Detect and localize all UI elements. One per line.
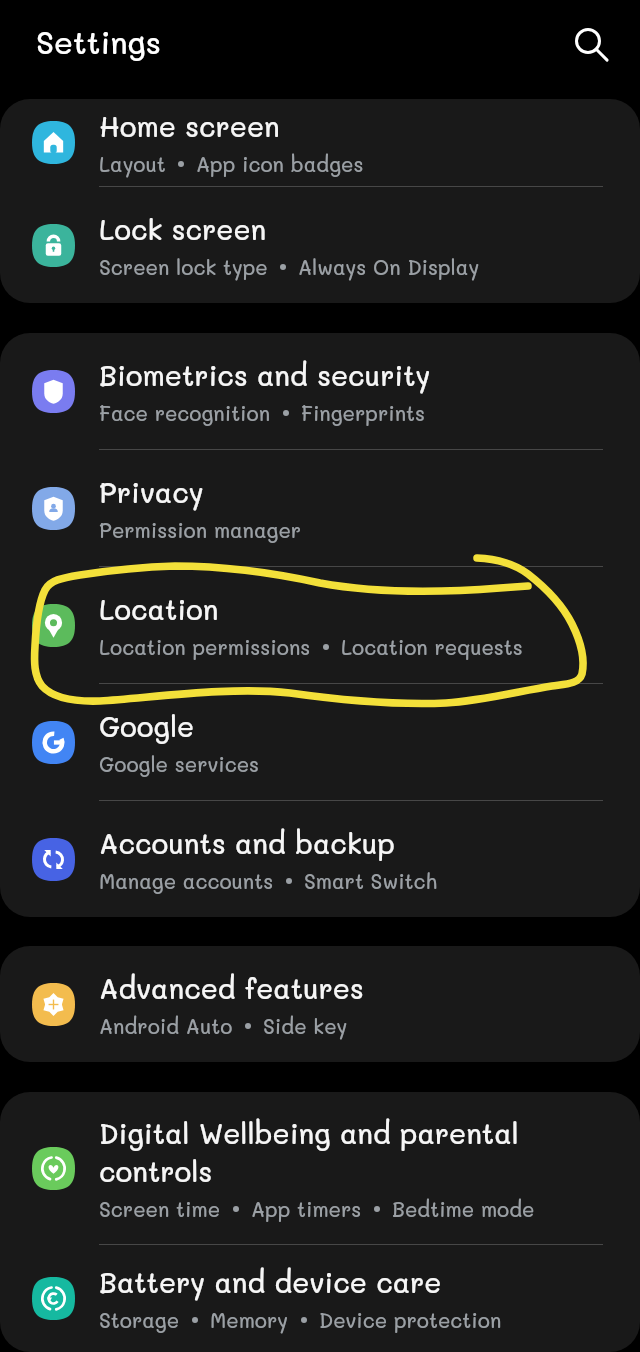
button[interactable]: Advanced features (0, 946, 640, 1062)
staticText: Side key (263, 1013, 348, 1039)
button[interactable]: Location (0, 567, 640, 683)
button[interactable]: Lock screen (0, 187, 640, 303)
staticText: Home screen (99, 108, 280, 144)
button[interactable]: Accounts and backup (0, 801, 640, 917)
staticText: Google services (99, 751, 260, 777)
staticText: Android Auto (99, 1013, 233, 1039)
button[interactable]: Digital Wellbeing and parental controls (0, 1092, 640, 1244)
staticText: App icon badges (196, 151, 364, 177)
button[interactable]: Privacy (0, 450, 640, 566)
staticText: Privacy (99, 474, 204, 510)
staticText: Biometrics and security (99, 357, 431, 393)
staticText: Permission manager (99, 517, 302, 543)
staticText: Screen lock type (99, 254, 268, 280)
button[interactable]: Biometrics and security (0, 333, 640, 449)
button[interactable]: Home screen (0, 99, 640, 186)
staticText: Location (99, 591, 219, 627)
staticText: Always On Display (298, 254, 480, 280)
staticText: Location permissions (99, 634, 311, 660)
button[interactable]: Search (564, 17, 612, 65)
staticText: Battery and device care (99, 1264, 442, 1300)
staticText: Google (99, 708, 195, 744)
staticText: Lock screen (99, 211, 267, 247)
staticText: Bedtime mode (392, 1196, 535, 1222)
staticText: Memory (210, 1307, 289, 1333)
button[interactable]: Google (0, 684, 640, 800)
staticText: Location requests (341, 634, 523, 660)
staticText: Fingerprints (301, 400, 425, 426)
staticText: Device protection (319, 1307, 502, 1333)
staticText: Layout (99, 151, 166, 177)
staticText: Smart Switch (304, 868, 438, 894)
staticText: Face recognition (99, 400, 271, 426)
staticText: Manage accounts (99, 868, 274, 894)
button[interactable]: Battery and device care (0, 1245, 640, 1352)
staticText: Digital Wellbeing and parental controls (99, 1115, 610, 1189)
staticText: Advanced features (99, 970, 364, 1006)
staticText: Screen time (99, 1196, 221, 1222)
staticText: App timers (251, 1196, 362, 1222)
staticText: Accounts and backup (99, 825, 395, 861)
staticText: Storage (99, 1307, 180, 1333)
staticText: Settings (36, 21, 161, 61)
